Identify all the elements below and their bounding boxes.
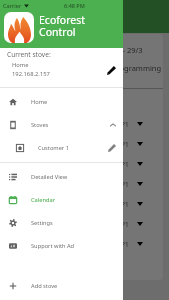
button[interactable]: Calendar xyxy=(0,188,123,211)
staticText: P1 xyxy=(121,180,129,189)
button[interactable]: Settings xyxy=(0,211,123,234)
button[interactable]: Add stove xyxy=(0,274,123,297)
staticText: P1 xyxy=(121,140,129,149)
staticText: P1 xyxy=(121,200,129,209)
staticText: P1 xyxy=(121,160,129,169)
button[interactable]: Detailed View xyxy=(0,165,123,188)
staticText: Settings xyxy=(31,219,53,227)
staticText: Carrier xyxy=(3,2,22,9)
staticText: Ecoforest Control xyxy=(39,13,86,39)
staticText: P1 xyxy=(121,220,129,229)
staticText: Home xyxy=(31,98,48,106)
staticText: Stoves xyxy=(31,121,49,129)
button[interactable]: Stoves xyxy=(0,113,123,136)
staticText: Calendar xyxy=(31,196,56,204)
staticText: 12/3 - 29/3 xyxy=(105,45,143,55)
staticText: Detailed View xyxy=(31,173,68,181)
button[interactable]: Edit current stove xyxy=(104,63,118,77)
staticText: P1 xyxy=(121,120,129,129)
staticText: 192.168.2.157 xyxy=(12,70,50,78)
staticText: Current stove: xyxy=(7,50,51,59)
staticText: P1 xyxy=(121,240,129,249)
staticText: Home xyxy=(12,61,29,69)
staticText: Weekly programming xyxy=(85,63,162,73)
staticText: 6:48 PM xyxy=(64,2,85,9)
staticText: Customer 1 xyxy=(38,144,69,152)
button[interactable]: Edit customer xyxy=(106,142,118,154)
staticText: Support with Ad xyxy=(31,242,75,250)
button[interactable]: Support with Ad xyxy=(0,234,123,257)
button[interactable]: Customer 1 xyxy=(0,136,123,159)
button[interactable]: Home xyxy=(0,90,123,113)
staticText: Add stove xyxy=(31,282,58,290)
